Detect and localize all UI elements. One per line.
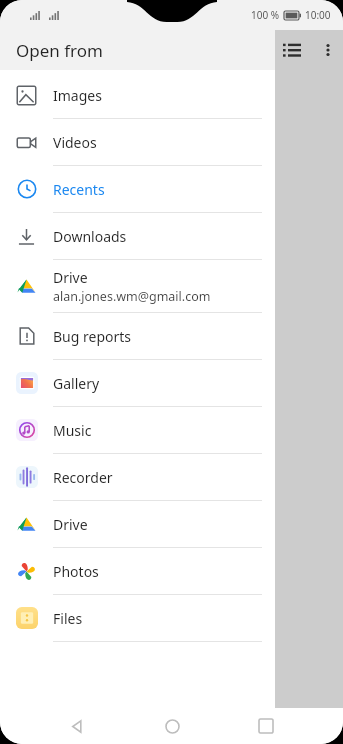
staticText: Bug reports	[53, 327, 132, 346]
button[interactable]: Files	[0, 595, 275, 641]
staticText: Photos	[53, 562, 99, 581]
staticText: Downloads	[53, 227, 127, 246]
button[interactable]: Images	[0, 72, 275, 118]
button[interactable]: Music	[0, 407, 275, 453]
staticText: Gallery	[53, 374, 100, 393]
staticText: Videos	[53, 133, 97, 152]
staticText: Images	[53, 86, 102, 105]
staticText: Recorder	[53, 468, 113, 487]
staticText: Recents	[53, 180, 105, 199]
button[interactable]: Bug reports	[0, 313, 275, 359]
button[interactable]: List view	[275, 33, 309, 67]
button[interactable]: Recorder	[0, 454, 275, 500]
staticText: Open from	[16, 39, 103, 62]
button[interactable]: Home	[154, 708, 190, 744]
button[interactable]: More options	[313, 35, 343, 65]
staticText: Files	[53, 609, 83, 628]
button[interactable]: Videos	[0, 119, 275, 165]
staticText: Music	[53, 421, 92, 440]
staticText: Drive	[53, 268, 88, 287]
staticText: 10:00	[305, 8, 331, 22]
button[interactable]: Photos	[0, 548, 275, 594]
button[interactable]: Recent apps	[248, 708, 284, 744]
staticText: 100 %	[251, 8, 280, 22]
staticText: Drive	[53, 515, 88, 534]
button[interactable]: Recents	[0, 166, 275, 212]
button[interactable]: Back	[59, 708, 95, 744]
button[interactable]: Downloads	[0, 213, 275, 259]
button[interactable]: Drive	[0, 501, 275, 547]
staticText: alan.jones.wm@gmail.com	[53, 288, 211, 305]
button[interactable]: Gallery	[0, 360, 275, 406]
button[interactable]: Drive	[0, 260, 275, 312]
